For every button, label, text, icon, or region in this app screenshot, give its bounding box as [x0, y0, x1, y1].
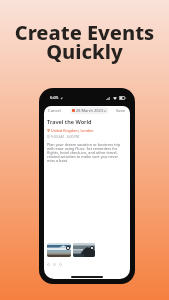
button[interactable]: Add photo	[47, 263, 50, 266]
button[interactable]: Remove photo	[90, 246, 94, 250]
staticText: Cancel	[48, 108, 62, 114]
staticText: Plan your dream vacation or business tri…	[47, 142, 124, 164]
staticText: 28 March 2023	[76, 108, 103, 113]
staticText: Save	[116, 108, 126, 114]
button[interactable]: More options	[59, 263, 62, 266]
button[interactable]: 28 March 2023	[70, 107, 108, 114]
button[interactable]: Cancel	[47, 106, 63, 116]
staticText: 9:00 AM - 6:00 PM	[51, 134, 80, 139]
staticText: Travel the World	[47, 118, 92, 126]
button[interactable]: Photo	[47, 243, 71, 257]
button[interactable]: Save	[115, 106, 127, 116]
button[interactable]: Photo	[73, 243, 95, 257]
staticText: Create Events Quickly	[0, 19, 169, 65]
button[interactable]: Remove photo	[66, 246, 70, 250]
staticText: United Kingdom, London	[51, 128, 94, 133]
button[interactable]: Add attachment	[53, 263, 56, 266]
staticText: 6:05	[50, 95, 59, 101]
